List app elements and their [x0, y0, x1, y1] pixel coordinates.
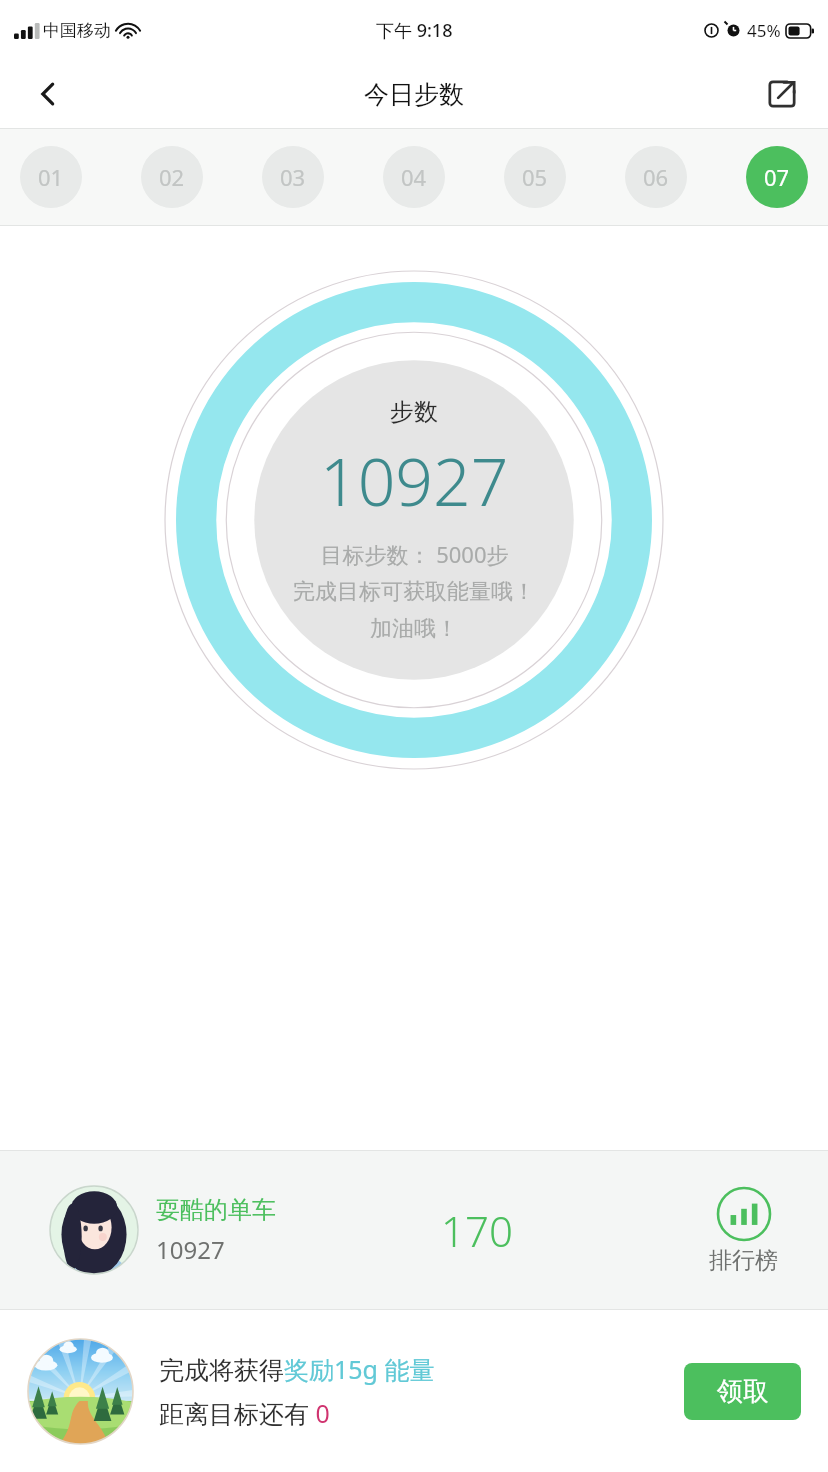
staticText: 10927 [156, 1233, 225, 1266]
staticText: 10927 [320, 435, 509, 525]
button[interactable]: 耍酷的单车 [0, 1151, 828, 1309]
staticText: 45% [747, 19, 781, 42]
button[interactable]: 排行榜 [703, 1186, 784, 1275]
staticText: 02 [159, 162, 185, 192]
button[interactable]: 05 [504, 146, 566, 208]
staticText: 05 [522, 162, 548, 192]
staticText: 完成目标可获取能量哦！ [293, 578, 535, 606]
staticText: 排行榜 [709, 1246, 778, 1275]
staticText: 耍酷的单车 [156, 1195, 276, 1225]
staticText: 步数 [390, 397, 438, 427]
staticText: 距离目标还有 0 [159, 1396, 330, 1430]
button[interactable]: 01 [20, 146, 82, 208]
staticText: 中国移动 [43, 20, 111, 41]
staticText: 加油哦！ [370, 615, 458, 643]
staticText: 07 [764, 162, 790, 192]
staticText: 06 [643, 162, 669, 192]
button[interactable]: Back [20, 66, 76, 122]
button[interactable]: 领取 [684, 1363, 801, 1420]
staticText: 完成将获得奖励15g 能量 [159, 1352, 435, 1386]
staticText: 领取 [717, 1375, 769, 1408]
button[interactable]: 02 [141, 146, 203, 208]
staticText: 170 [441, 1202, 513, 1259]
button[interactable]: 04 [383, 146, 445, 208]
button[interactable]: 完成将获得奖励15g 能量 [0, 1310, 828, 1472]
staticText: 03 [280, 162, 306, 192]
button[interactable]: Share [756, 68, 808, 120]
staticText: 01 [38, 162, 64, 192]
button[interactable]: 03 [262, 146, 324, 208]
button[interactable]: 07 [746, 146, 808, 208]
staticText: 04 [401, 162, 427, 192]
staticText: 今日步数 [364, 79, 464, 110]
button[interactable]: 06 [625, 146, 687, 208]
staticText: 下午 9:18 [376, 18, 453, 43]
staticText: 目标步数： 5000步 [320, 539, 509, 569]
